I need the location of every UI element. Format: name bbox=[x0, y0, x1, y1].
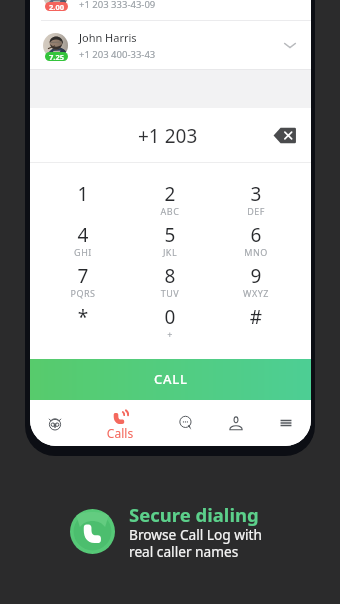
staticText: DEF bbox=[213, 205, 299, 217]
staticText: CALL bbox=[154, 370, 188, 388]
button[interactable]: 7.25 bbox=[30, 20, 311, 70]
staticText: 5 bbox=[127, 222, 213, 248]
button[interactable]: Expand bbox=[282, 37, 298, 53]
staticText: WXYZ bbox=[213, 287, 299, 299]
staticText: 1 bbox=[40, 181, 126, 207]
staticText: 4 bbox=[40, 222, 126, 248]
button[interactable]: # bbox=[213, 296, 299, 337]
staticText: 2 bbox=[127, 181, 213, 207]
button[interactable]: 7 bbox=[40, 255, 126, 296]
button[interactable]: Menu bbox=[253, 400, 311, 446]
staticText: 9 bbox=[213, 263, 299, 289]
staticText: 3 bbox=[213, 181, 299, 207]
button[interactable]: 5 bbox=[127, 214, 213, 255]
button[interactable]: 9 bbox=[213, 255, 299, 296]
button[interactable]: CALL bbox=[30, 359, 311, 400]
button[interactable]: 0 bbox=[127, 296, 213, 337]
button[interactable]: 3 bbox=[213, 173, 299, 214]
button[interactable]: 4 bbox=[40, 214, 126, 255]
staticText: Secure dialing bbox=[129, 502, 259, 527]
staticText: # bbox=[213, 304, 299, 330]
button[interactable]: Spam protection bbox=[30, 400, 87, 446]
button[interactable]: 6 bbox=[213, 214, 299, 255]
button[interactable]: Contacts bbox=[219, 400, 253, 446]
staticText: 8 bbox=[127, 263, 213, 289]
staticText: JKL bbox=[127, 246, 213, 258]
staticText: GHI bbox=[40, 246, 126, 258]
staticText: PQRS bbox=[40, 287, 126, 299]
staticText: Calls bbox=[87, 425, 153, 441]
staticText: 0 bbox=[127, 304, 213, 330]
staticText: 7 bbox=[40, 263, 126, 289]
staticText: + bbox=[127, 328, 213, 340]
button[interactable]: Backspace bbox=[272, 124, 298, 147]
staticText: ABC bbox=[127, 205, 213, 217]
button[interactable]: Calls bbox=[87, 400, 153, 446]
staticText: +1 203 333-43-09 bbox=[79, 0, 156, 11]
staticText: * bbox=[40, 304, 126, 330]
staticText: Browse Call Log with bbox=[129, 525, 262, 544]
staticText: real caller names bbox=[129, 542, 239, 561]
staticText: John Harris bbox=[79, 30, 137, 45]
button[interactable]: 1 bbox=[40, 173, 126, 214]
staticText: MNO bbox=[213, 246, 299, 258]
staticText: 6 bbox=[213, 222, 299, 248]
button[interactable]: * bbox=[40, 296, 126, 337]
staticText: 7.25 bbox=[49, 52, 64, 61]
staticText: TUV bbox=[127, 287, 213, 299]
staticText: +1 203 bbox=[138, 123, 198, 149]
button[interactable]: 2 bbox=[127, 173, 213, 214]
button[interactable]: Messages bbox=[153, 400, 219, 446]
staticText: 2.00 bbox=[49, 2, 64, 11]
button[interactable]: 2.00 bbox=[30, 0, 311, 20]
button[interactable]: 8 bbox=[127, 255, 213, 296]
staticText: +1 203 400-33-43 bbox=[79, 48, 156, 61]
